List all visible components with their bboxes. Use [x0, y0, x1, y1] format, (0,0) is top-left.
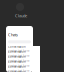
staticText: preview text here: [8, 69, 30, 72]
staticText: Conversation: [8, 45, 26, 48]
staticText: Conversation: [8, 65, 26, 68]
staticText: preview text here: [8, 49, 30, 53]
staticText: Conversation: [8, 60, 26, 63]
staticText: preview text here: [8, 59, 30, 63]
staticText: Conversation: [8, 70, 26, 72]
staticText: preview text here: [8, 54, 30, 58]
staticText: Conversation: [8, 50, 26, 53]
staticText: Chats: [8, 32, 18, 37]
staticText: Claude: [15, 13, 27, 18]
staticText: preview text here: [8, 64, 30, 68]
staticText: Conversation: [8, 55, 26, 58]
